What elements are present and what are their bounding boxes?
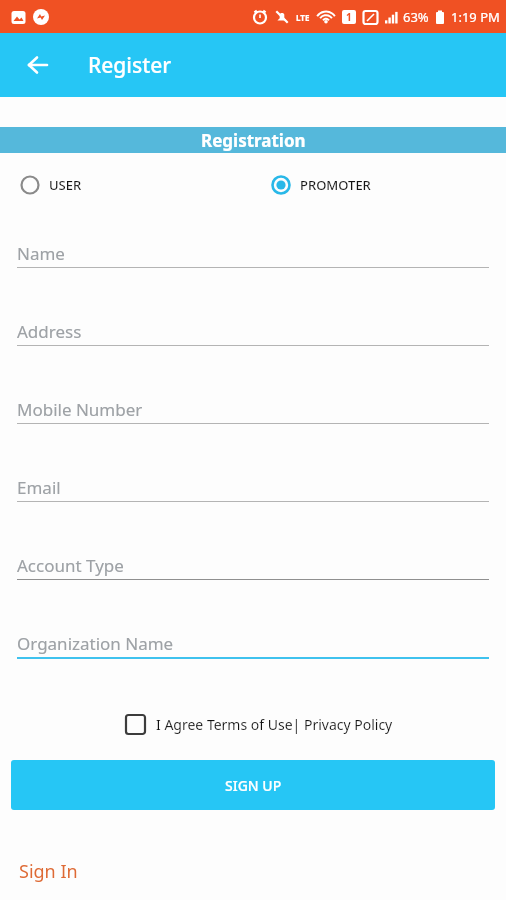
button[interactable] [22,49,54,81]
button[interactable]: Organization Name [17,632,489,659]
staticText: Registration [201,129,306,152]
button[interactable]: Account Type [17,554,489,580]
button[interactable]: USER [20,175,82,195]
button[interactable]: I Agree Terms of Use| Privacy Policy [106,714,412,735]
staticText: PROMOTER [300,176,371,194]
staticText: USER [49,176,82,194]
staticText: Name [17,242,65,265]
button[interactable]: Mobile Number [17,398,489,424]
button[interactable]: SIGN UP [11,760,495,810]
staticText: I Agree Terms of Use| Privacy Policy [156,715,393,734]
staticText: Register [88,51,172,80]
staticText: Mobile Number [17,398,143,421]
button[interactable]: Email [17,476,489,502]
staticText: 1:19 PM [451,8,500,26]
button[interactable]: Sign In [19,859,78,884]
staticText: 1 [346,10,352,24]
staticText: Organization Name [17,632,174,655]
staticText: LTE [296,12,310,23]
staticText: 63% [403,8,429,26]
button[interactable]: Name [17,242,489,268]
staticText: Email [17,476,61,499]
button[interactable]: Address [17,320,489,346]
staticText: Account Type [17,554,124,577]
staticText: Address [17,320,82,343]
button[interactable]: PROMOTER [271,175,371,195]
staticText: SIGN UP [225,776,282,795]
